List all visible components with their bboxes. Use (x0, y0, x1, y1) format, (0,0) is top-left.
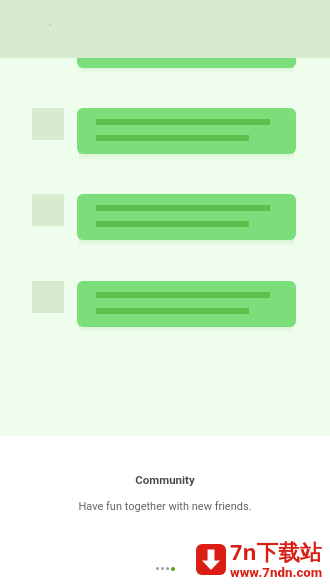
button[interactable]: Community post (77, 108, 296, 154)
button[interactable]: Page 3 (166, 567, 169, 570)
button[interactable]: Page 4 (171, 567, 175, 571)
button[interactable]: Download (196, 544, 226, 575)
button[interactable]: Community post (77, 22, 296, 68)
staticText: 7n下载站 (230, 537, 322, 567)
button[interactable]: Community post (77, 281, 296, 327)
button[interactable]: Page 2 (161, 567, 164, 570)
button[interactable]: Community post (77, 194, 296, 240)
button[interactable]: Page 1 (156, 567, 159, 570)
staticText: Have fun together with new friends. (0, 500, 330, 513)
staticText: Community (0, 473, 330, 486)
staticText: www.7ndn.com (230, 565, 323, 581)
